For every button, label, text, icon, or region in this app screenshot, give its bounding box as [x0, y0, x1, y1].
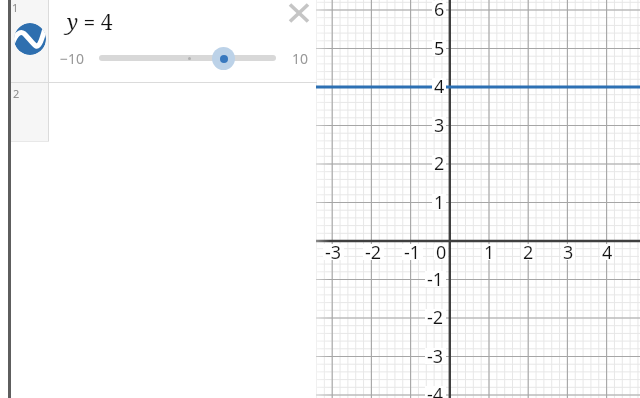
button[interactable] [99, 55, 276, 61]
staticText: 5 [434, 36, 445, 61]
staticText: -2 [365, 240, 382, 265]
staticText: 4 [434, 74, 445, 99]
staticText: 6 [434, 0, 445, 22]
staticText: 2 [523, 240, 534, 265]
staticText: -1 [404, 240, 421, 265]
staticText: -3 [427, 344, 444, 369]
staticText: -4 [427, 382, 444, 398]
staticText: y = 4 [67, 8, 113, 37]
staticText: 2 [13, 86, 20, 101]
button[interactable] [14, 23, 46, 55]
staticText: -1 [427, 267, 444, 292]
button[interactable] [212, 47, 235, 70]
staticText: 4 [602, 240, 613, 265]
staticText: 10 [292, 49, 309, 68]
staticText: -2 [427, 305, 444, 330]
staticText: 0 [436, 240, 447, 265]
button[interactable] [49, 82, 316, 141]
button[interactable] [286, 0, 312, 26]
staticText: −10 [60, 49, 85, 68]
staticText: -3 [325, 240, 342, 265]
staticText: 1 [434, 190, 445, 215]
button[interactable] [49, 0, 316, 82]
staticText: 3 [434, 113, 445, 138]
staticText: 2 [434, 151, 445, 176]
staticText: 1 [12, 0, 19, 15]
staticText: 1 [484, 240, 495, 265]
staticText: 3 [563, 240, 574, 265]
